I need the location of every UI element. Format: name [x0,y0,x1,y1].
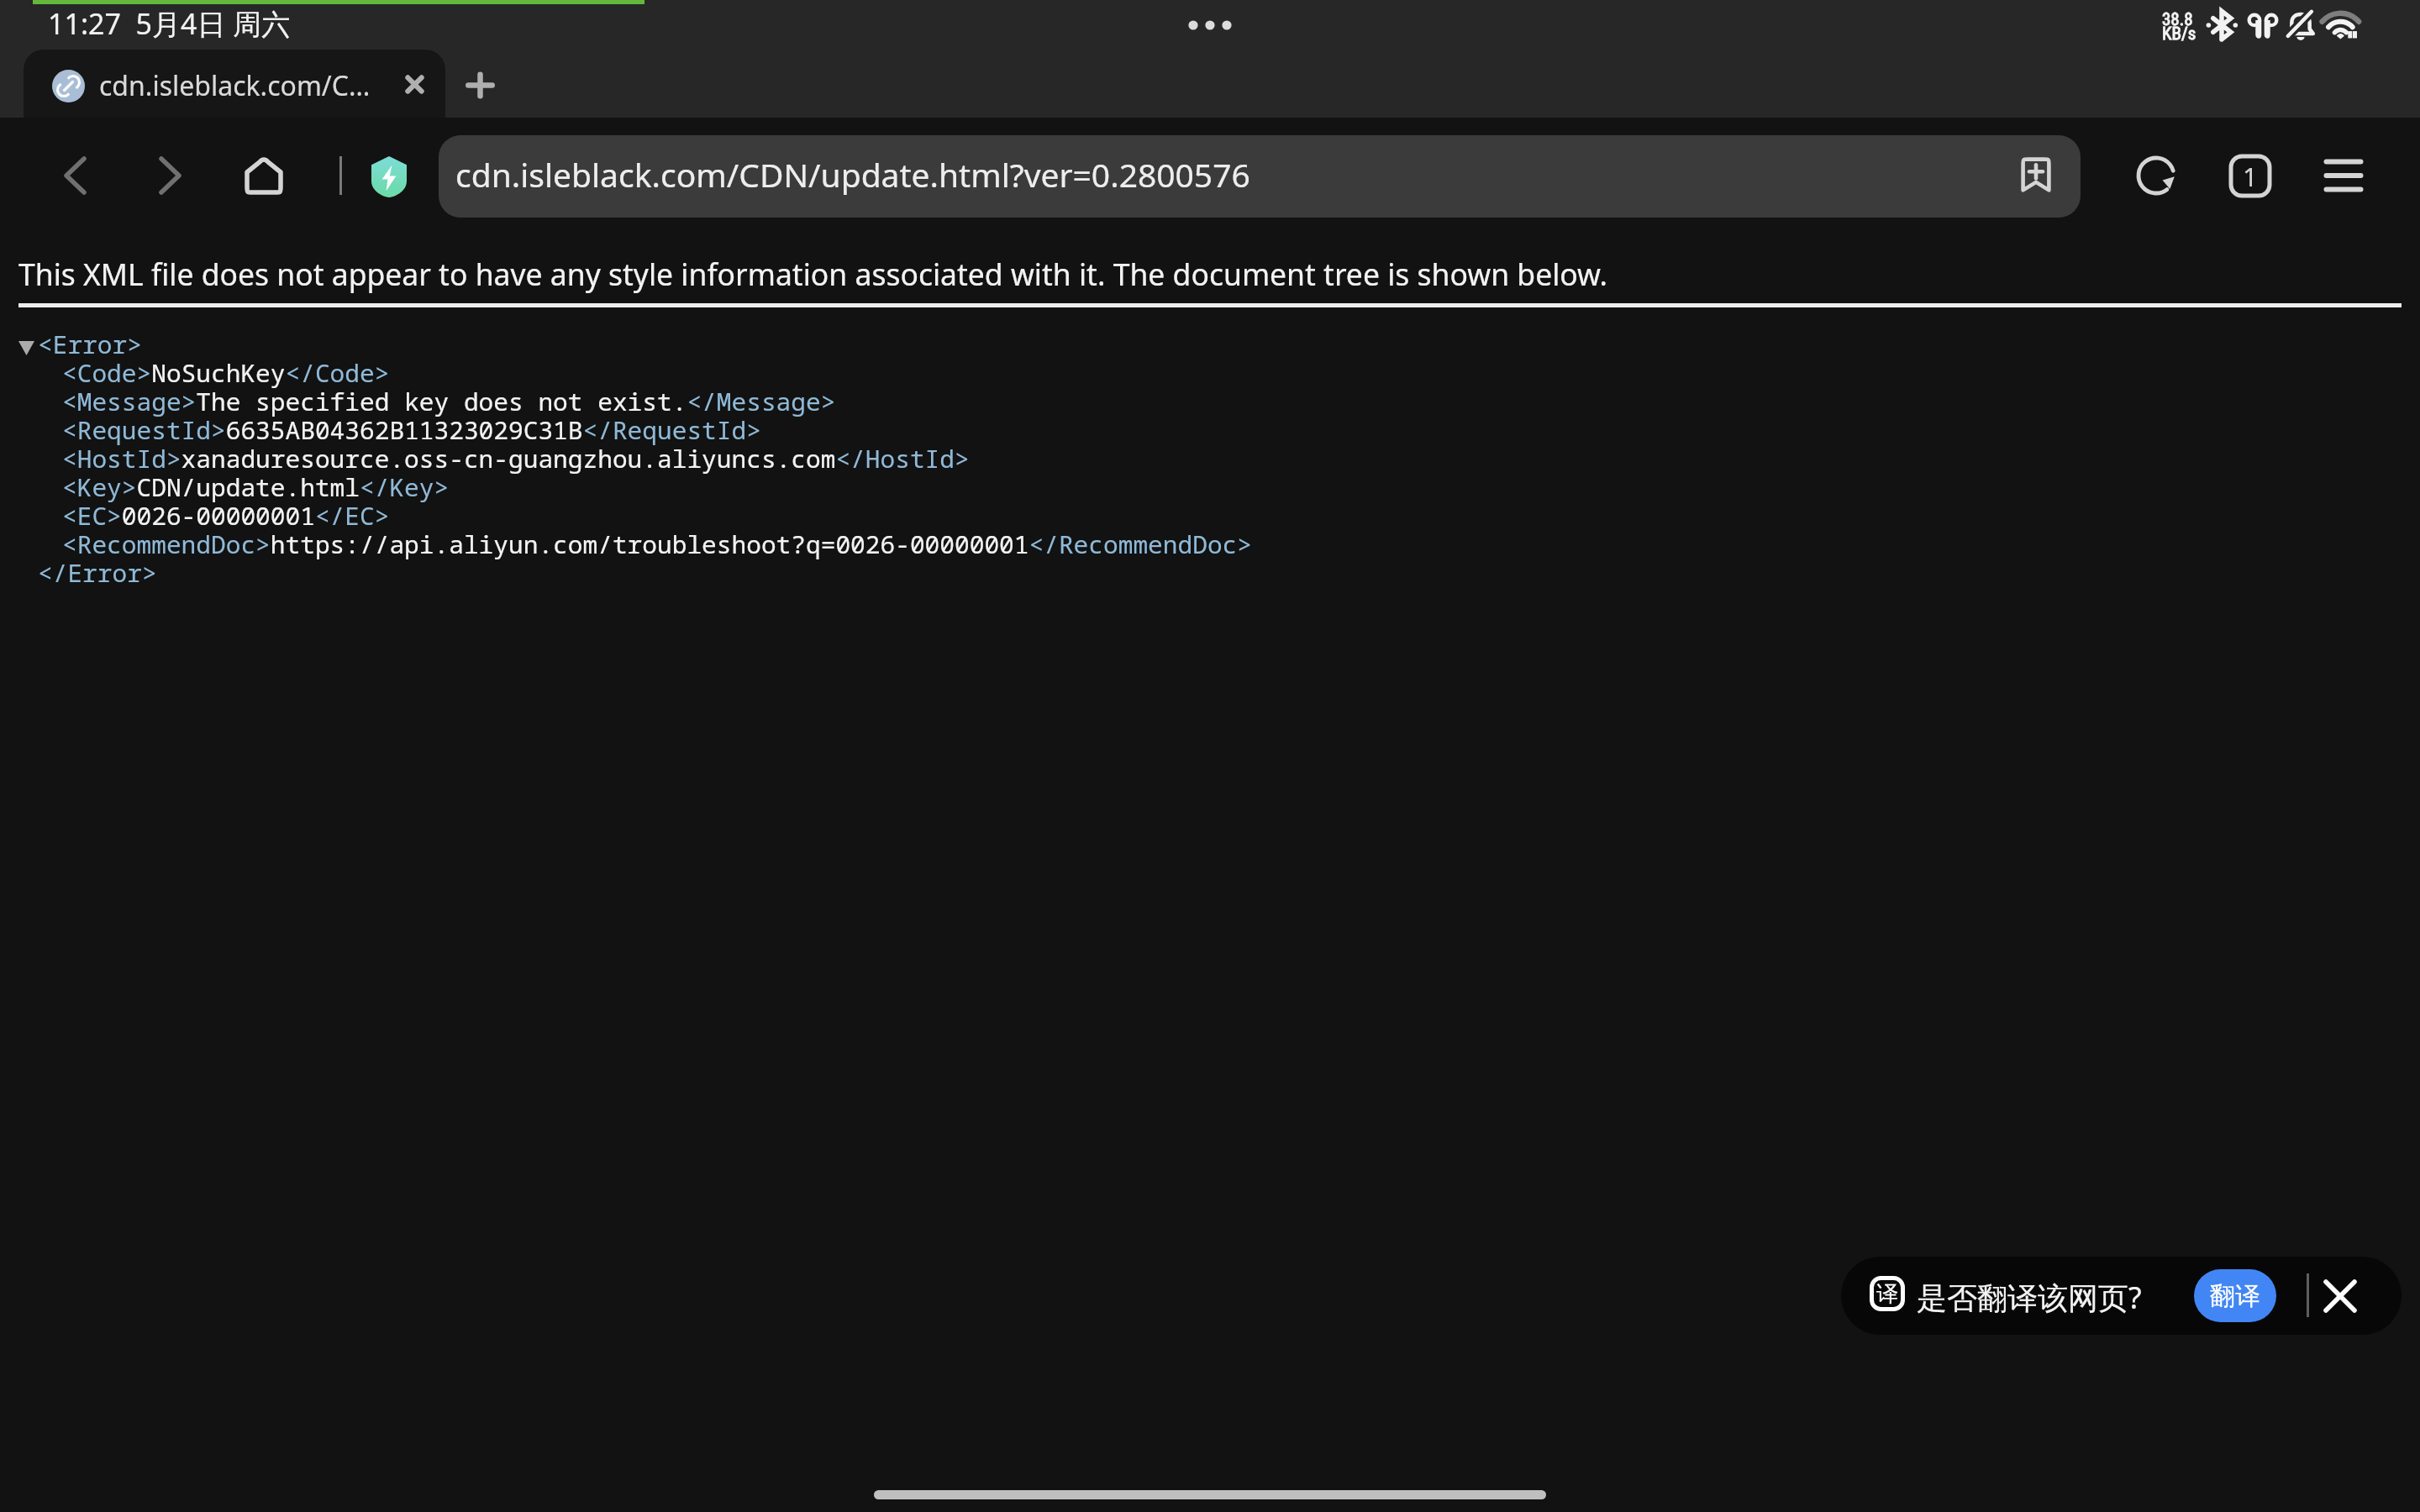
staticText: <RequestId>6635AB04362B11323029C31B</Req… [62,412,761,446]
staticText: <Key>CDN/update.html</Key> [62,470,450,503]
button[interactable]: cdn.isleblack.com/CDN/update.html?ver=0.… [439,135,2081,218]
staticText: <Message>The specified key does not exis… [62,384,836,417]
staticText: 译 [1876,1280,1898,1308]
button[interactable]: Close tab [396,66,434,103]
button[interactable]: Home [245,156,283,195]
staticText: <RecommendDoc>https://api.aliyun.com/tro… [62,527,1252,560]
staticText: 11:27 5月4日 周六 [48,4,291,43]
staticText: </Error> [38,555,157,589]
staticText: cdn.isleblack.com/CDN/update.html?ver=0.… [455,152,1250,197]
button[interactable]: New tab [460,65,501,106]
staticText: <HostId>xanaduresource.oss-cn-guangzhou.… [62,441,970,475]
button[interactable]: Menu [2313,145,2374,206]
staticText: <Error> [38,327,142,360]
button[interactable]: Dismiss [2319,1275,2361,1317]
button[interactable]: Back [45,145,105,206]
staticText: 38.8 [2162,9,2193,30]
button[interactable]: Add bookmark [2021,157,2051,192]
staticText: 是否翻译该网页? [1917,1277,2142,1318]
button[interactable]: Forward [140,145,201,206]
staticText: This XML file does not appear to have an… [18,254,1608,294]
staticText: cdn.isleblack.com/C… [99,67,371,104]
staticText: <EC>0026-00000001</EC> [62,498,390,532]
button[interactable]: Reload [2126,145,2186,206]
staticText: <Code>NoSuchKey</Code> [62,355,390,389]
button[interactable]: Tabs [2221,146,2280,206]
button[interactable]: 翻译 [2194,1269,2276,1322]
button[interactable]: Security [371,156,407,197]
button[interactable]: cdn.isleblack.com/C… [24,50,445,118]
staticText: 翻译 [2210,1280,2260,1312]
staticText: KB/s [2162,24,2196,45]
staticText: 1 [2243,159,2258,194]
